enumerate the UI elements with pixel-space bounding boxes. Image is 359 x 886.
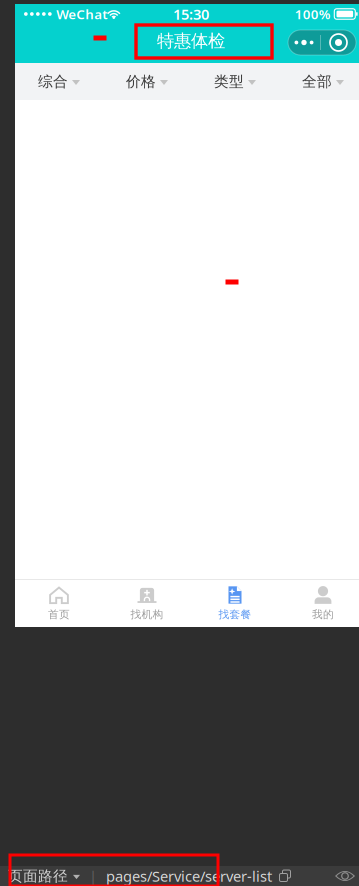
staticText: 找套餐 (218, 608, 251, 621)
staticText: 100% (295, 5, 331, 23)
button[interactable]: Copy path (272, 869, 291, 882)
staticText: 找机构 (130, 608, 163, 621)
staticText: 我的 (312, 608, 334, 621)
button[interactable]: More options and close (288, 30, 356, 55)
button[interactable]: 类型 (191, 63, 279, 100)
button[interactable]: Preview (335, 868, 355, 884)
staticText: 类型 (214, 72, 244, 90)
button[interactable]: 我的 (279, 580, 359, 626)
staticText: WeChat (56, 5, 107, 23)
staticText: | (89, 866, 97, 886)
staticText: 综合 (38, 72, 68, 90)
button[interactable]: 找套餐 (191, 580, 279, 626)
staticText: 15:30 (173, 4, 209, 24)
button[interactable]: 全部 (279, 63, 359, 100)
staticText: 价格 (126, 72, 156, 90)
button[interactable]: 找机构 (103, 580, 191, 626)
button[interactable]: 价格 (103, 63, 191, 100)
staticText: pages/Service/server-list (106, 866, 272, 886)
button[interactable]: 页面路径 (8, 867, 80, 885)
button[interactable]: 首页 (15, 580, 103, 626)
button[interactable]: 综合 (15, 63, 103, 100)
staticText: 全部 (302, 72, 332, 90)
staticText: 特惠体检 (157, 30, 225, 52)
staticText: 页面路径 (8, 867, 68, 885)
staticText: 首页 (48, 608, 70, 621)
